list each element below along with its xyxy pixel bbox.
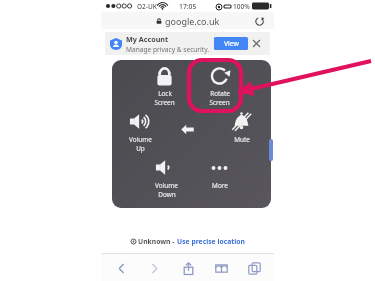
button[interactable]: Share (175, 255, 201, 281)
staticText: Mute (234, 135, 250, 144)
button[interactable]: Tabs (241, 255, 267, 281)
staticText: Lock (158, 89, 172, 98)
button[interactable]: Mute (216, 110, 266, 154)
staticText: google.co.uk (165, 15, 220, 27)
staticText: Manage privacy & security. (126, 45, 210, 54)
staticText: Up (136, 144, 145, 153)
button[interactable]: Reload (253, 15, 265, 27)
staticText: More (212, 181, 228, 190)
button[interactable]: Bookmarks (208, 255, 234, 281)
button[interactable]: Volume (112, 110, 170, 154)
staticText: 100% (233, 2, 250, 11)
staticText: Volume (155, 181, 178, 190)
button[interactable]: Volume (140, 156, 192, 202)
button[interactable]: Forward (141, 255, 167, 281)
staticText: My Account (126, 34, 169, 44)
button[interactable]: Rotate (195, 64, 243, 110)
button[interactable]: Dismiss (248, 35, 265, 52)
staticText: Screen (209, 98, 230, 107)
staticText: View (224, 39, 239, 48)
staticText: 17:05 (179, 2, 197, 11)
button[interactable]: Lock (140, 64, 188, 110)
staticText: O2-UK (137, 2, 157, 11)
staticText: Down (158, 190, 176, 199)
button[interactable]: Use precise location (177, 237, 245, 246)
staticText: Screen (154, 98, 175, 107)
button[interactable]: More (195, 156, 243, 202)
staticText: Unknown - (138, 237, 177, 246)
button[interactable]: Back (108, 255, 134, 281)
staticText: Rotate (210, 89, 230, 98)
staticText: Use precise location (177, 237, 245, 246)
button[interactable]: View (214, 37, 248, 50)
staticText: Volume (129, 135, 152, 144)
button[interactable]: Back (174, 116, 200, 142)
